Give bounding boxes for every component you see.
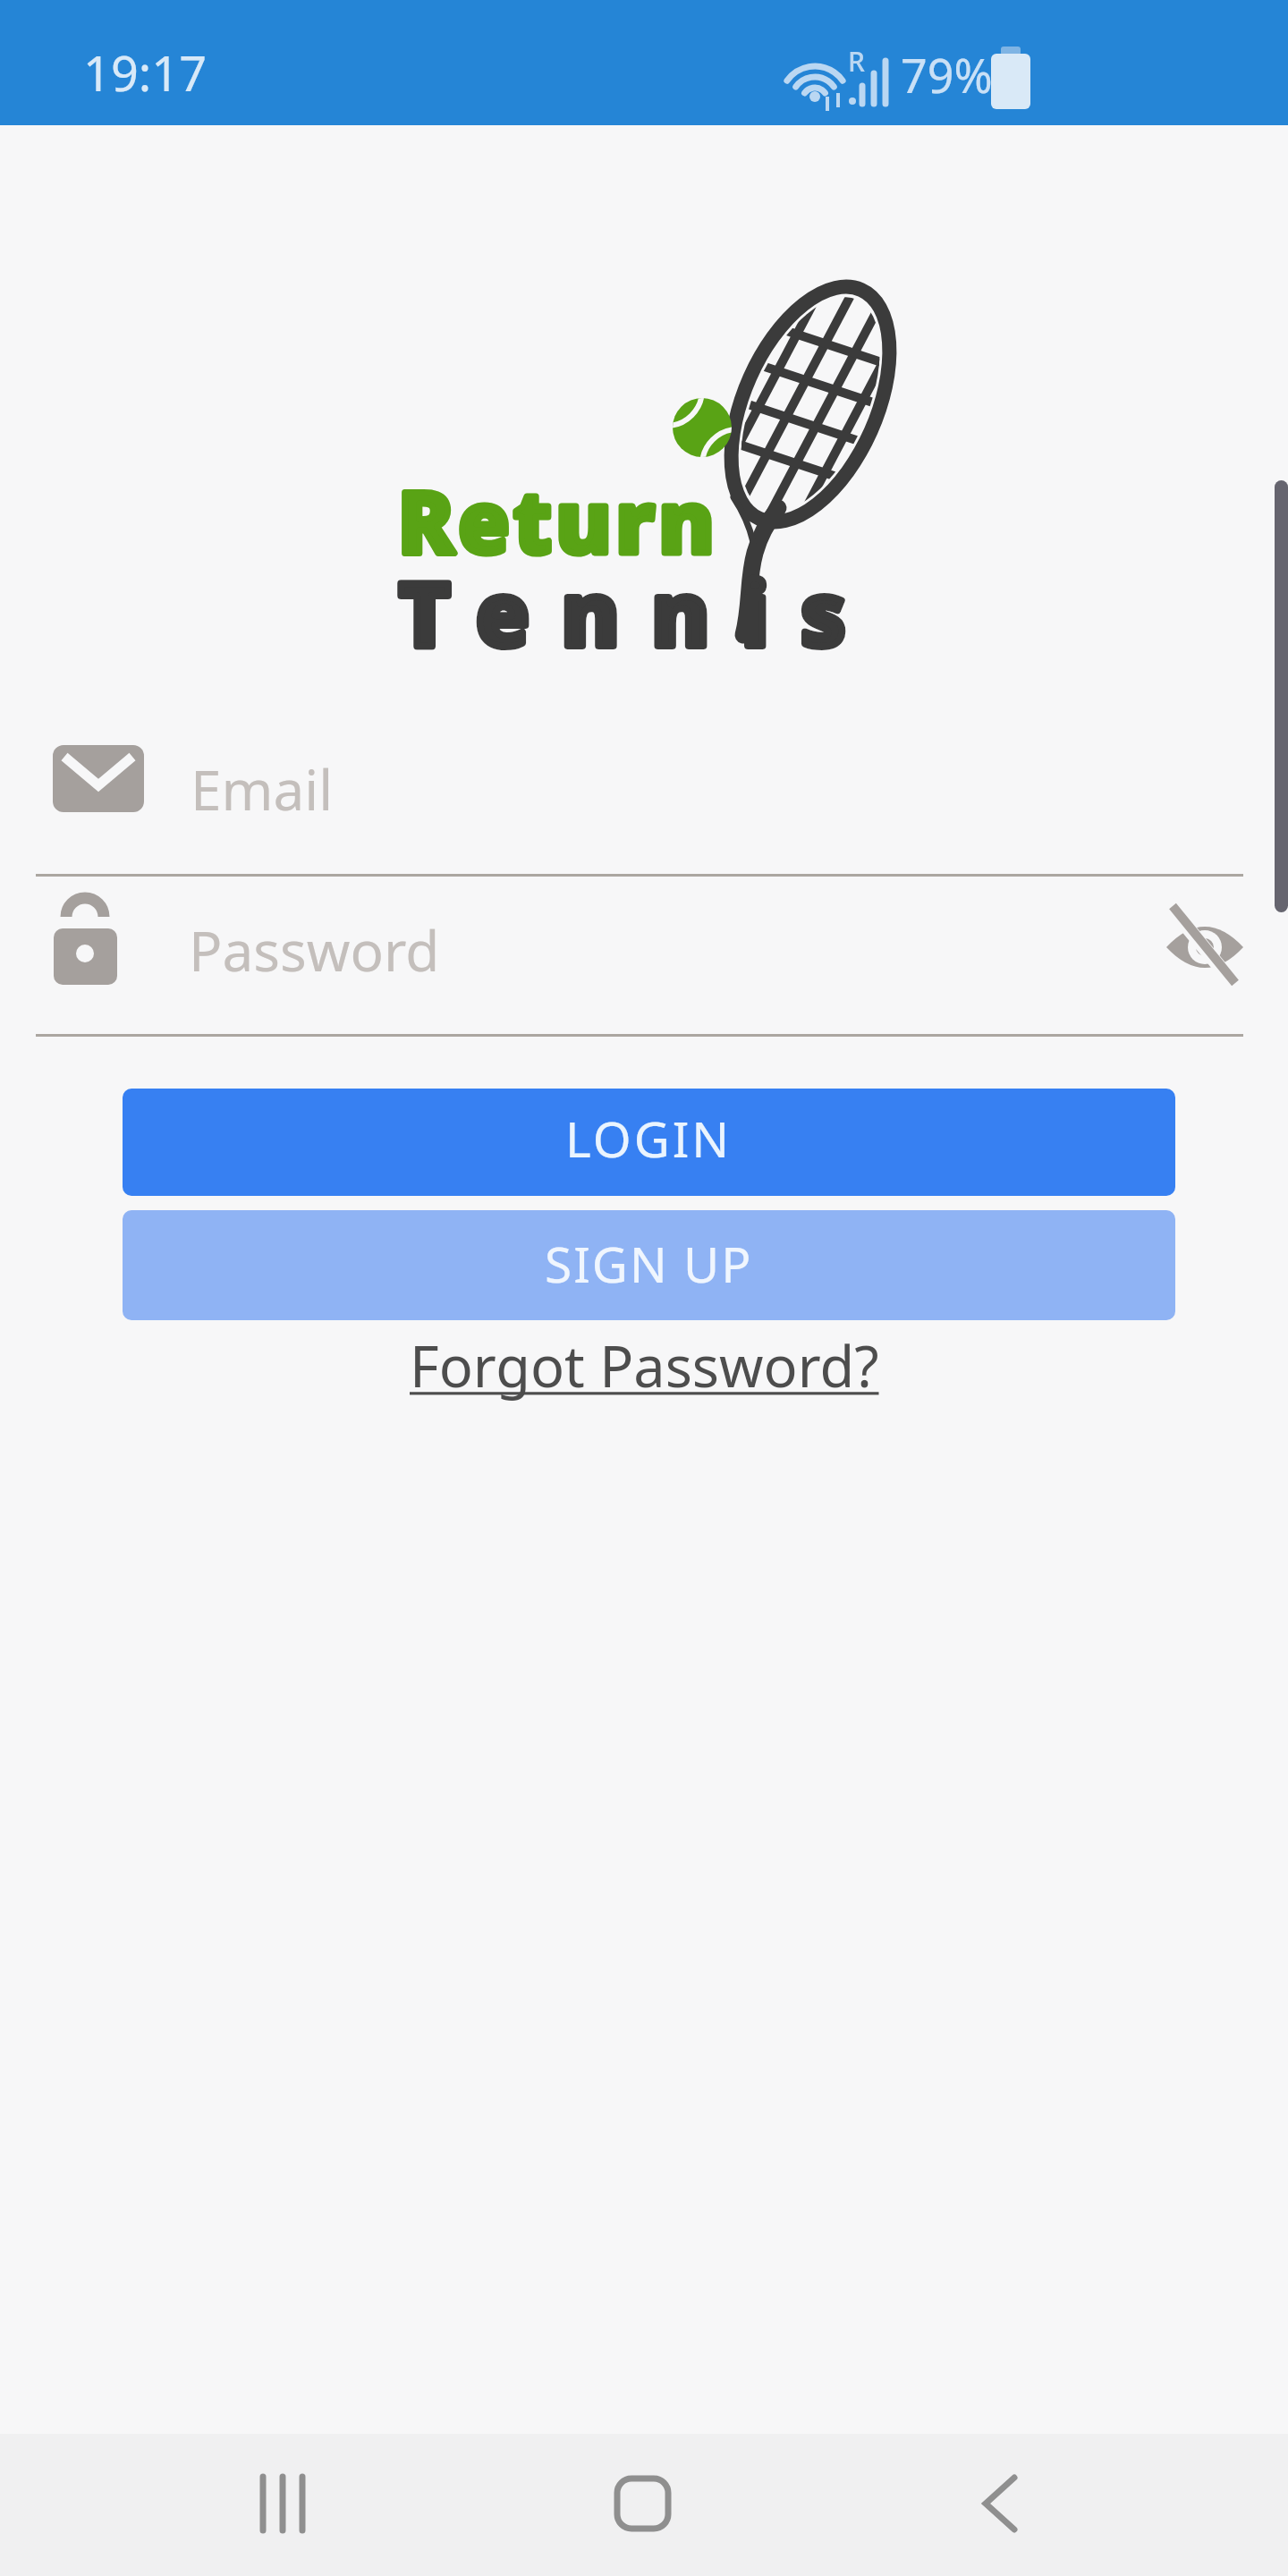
staticText: 19:17 [83,39,208,106]
button[interactable]: Forgot Password? [394,1317,894,1415]
button[interactable] [215,2442,358,2567]
button[interactable]: Email [36,733,1243,877]
button[interactable]: Password [36,894,1145,1036]
staticText: Return [398,463,719,578]
button[interactable]: SIGN UP [123,1210,1175,1320]
staticText: Tennis [399,552,878,671]
staticText: SIGN UP [545,1230,753,1297]
staticText: R [848,43,865,80]
staticText: Tennis [399,552,878,671]
staticText: Forgot Password? [410,1327,879,1404]
button[interactable] [1154,899,1256,997]
staticText: Return [398,463,719,578]
staticText: Email [191,751,334,826]
button[interactable]: LOGIN [123,1089,1175,1196]
button[interactable] [930,2442,1073,2567]
staticText: Password [189,912,440,987]
staticText: LOGIN [565,1105,733,1172]
staticText: 79% [901,43,993,106]
button[interactable] [572,2442,716,2567]
